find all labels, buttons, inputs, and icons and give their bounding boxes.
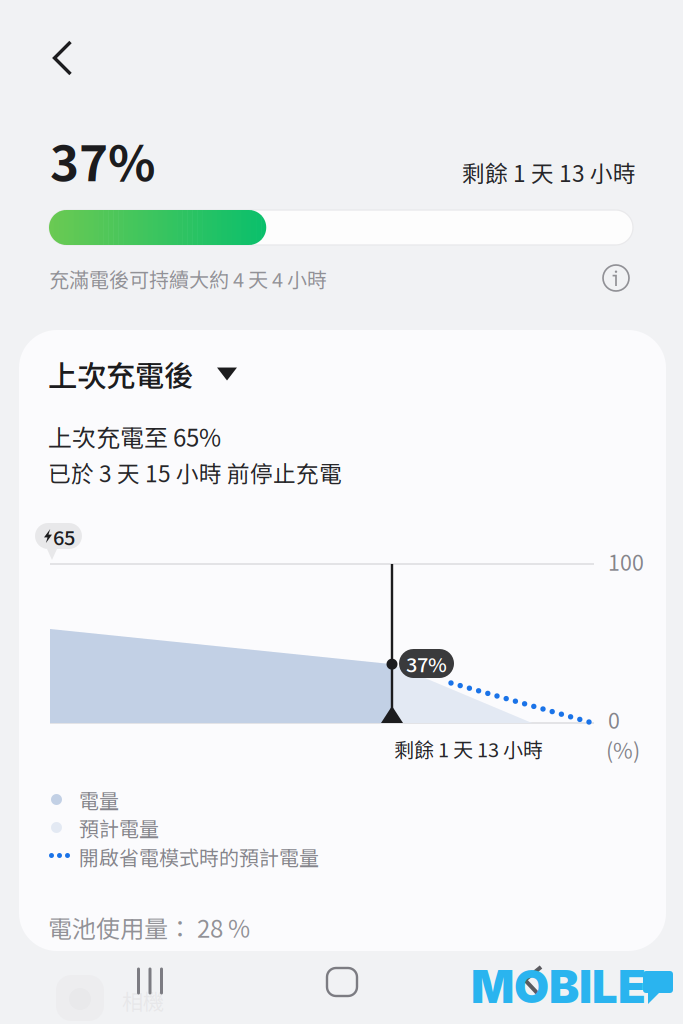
staticText: 上次充電至 65% [48,419,221,454]
staticText: 相機 [122,985,164,1016]
staticText: 37% [50,124,156,195]
staticText: 上次充電後 [48,353,193,395]
staticText: 電池使用量： 28 % [48,910,250,945]
staticText: 剩餘 1 天 13 小時 [462,156,636,188]
staticText: MOBILE [471,959,646,1014]
button[interactable]: Information [594,256,638,300]
staticText: 充滿電後可持續大約 4 天 4 小時 [49,264,327,293]
button[interactable]: Back [32,27,94,89]
staticText: 37% [406,649,447,678]
staticText: 65 [53,522,75,551]
staticText: 0 [608,704,620,735]
button[interactable]: Home [302,952,382,1012]
staticText: 100 [608,546,644,577]
button[interactable]: Recents [110,951,190,1011]
staticText: 預計電量 [79,813,159,842]
staticText: (%) [606,734,640,765]
staticText: 開啟省電模式時的預計電量 [79,842,319,871]
staticText: 已於 3 天 15 小時 前停止充電 [48,456,342,489]
staticText: 電量 [79,785,119,814]
button[interactable]: 上次充電後 [48,359,308,389]
staticText: 剩餘 1 天 13 小時 [394,734,543,763]
